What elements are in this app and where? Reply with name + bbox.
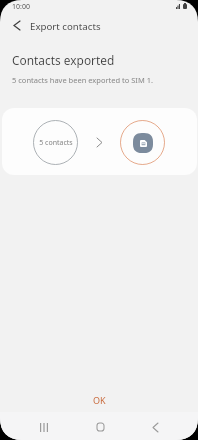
staticText: 10:00 <box>12 2 30 12</box>
button[interactable]: 5 contacts <box>33 120 78 165</box>
staticText: Contacts exported <box>12 52 115 68</box>
button[interactable]: Home <box>80 414 120 440</box>
staticText: 5 contacts have been exported to SIM 1. <box>12 75 153 85</box>
button[interactable]: Recents <box>24 414 64 440</box>
staticText: Export contacts <box>30 20 101 33</box>
staticText: 5 contacts <box>39 138 73 148</box>
button[interactable]: OK <box>0 390 198 410</box>
button[interactable] <box>120 120 165 165</box>
staticText: OK <box>93 394 106 406</box>
button[interactable]: Back <box>135 414 175 440</box>
button[interactable]: Navigate up <box>4 13 29 38</box>
